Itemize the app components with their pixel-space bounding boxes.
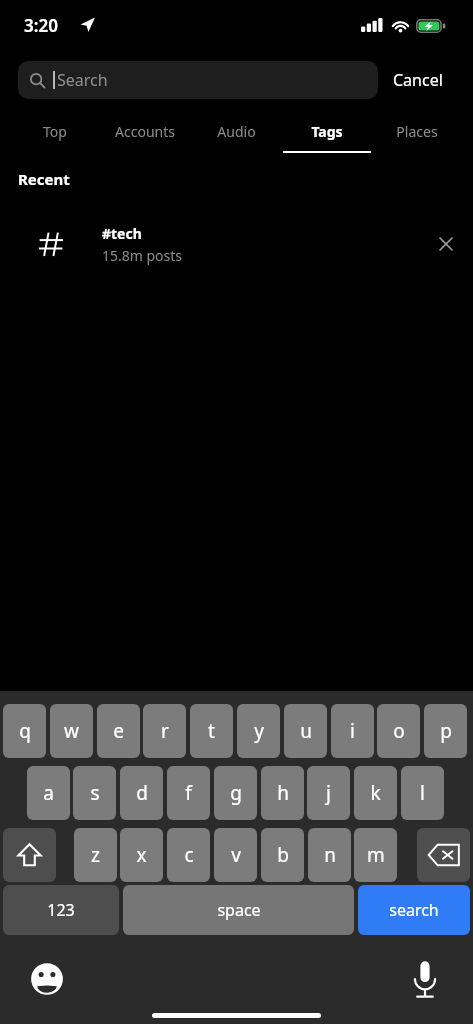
button[interactable]: t <box>190 704 233 758</box>
staticText: Tags <box>311 122 343 141</box>
staticText: Accounts <box>115 122 175 141</box>
staticText: search <box>389 899 439 921</box>
button[interactable]: y <box>237 704 280 758</box>
button[interactable]: w <box>50 704 93 758</box>
button[interactable]: #tech <box>0 213 473 275</box>
staticText: Recent <box>18 169 70 189</box>
staticText: Audio <box>217 122 256 141</box>
button[interactable]: Emoji keyboard <box>24 956 70 1002</box>
button[interactable]: search <box>358 885 470 935</box>
button[interactable]: q <box>3 704 46 758</box>
button[interactable]: r <box>143 704 186 758</box>
staticText: r <box>161 718 169 744</box>
button[interactable]: u <box>284 704 327 758</box>
staticText: Places <box>396 122 438 141</box>
button[interactable]: o <box>377 704 420 758</box>
button[interactable]: Shift <box>3 828 56 882</box>
button[interactable]: h <box>261 766 304 820</box>
staticText: 15.8m posts <box>102 246 183 265</box>
staticText: e <box>113 718 124 744</box>
button[interactable]: i <box>331 704 374 758</box>
staticText: d <box>136 780 148 806</box>
button[interactable]: 123 <box>3 885 119 935</box>
button[interactable]: Tags <box>282 114 372 154</box>
button[interactable]: n <box>308 828 351 882</box>
staticText: k <box>370 780 381 806</box>
button[interactable]: g <box>214 766 257 820</box>
button[interactable]: l <box>401 766 444 820</box>
staticText: v <box>231 842 241 868</box>
button[interactable]: k <box>354 766 397 820</box>
button[interactable]: p <box>424 704 467 758</box>
staticText: 3:20 <box>24 14 58 37</box>
staticText: Top <box>43 122 67 141</box>
staticText: x <box>136 842 147 868</box>
button[interactable]: m <box>354 828 397 882</box>
button[interactable]: space <box>123 885 354 935</box>
button[interactable]: d <box>120 766 163 820</box>
button[interactable]: v <box>214 828 257 882</box>
button[interactable]: Search <box>18 61 378 99</box>
button[interactable]: Voice input <box>402 953 448 1005</box>
button[interactable]: j <box>307 766 350 820</box>
staticText: l <box>420 780 425 806</box>
staticText: c <box>184 842 194 868</box>
button[interactable]: Audio <box>191 114 281 154</box>
button[interactable]: f <box>167 766 210 820</box>
staticText: Search <box>57 69 108 91</box>
button[interactable]: a <box>27 766 70 820</box>
staticText: 123 <box>47 899 75 921</box>
staticText: t <box>208 718 215 744</box>
button[interactable]: s <box>73 766 116 820</box>
staticText: #tech <box>102 224 142 243</box>
staticText: a <box>43 780 54 806</box>
button[interactable]: Cancel <box>388 62 448 98</box>
staticText: s <box>90 780 100 806</box>
button[interactable]: Backspace <box>417 828 470 882</box>
staticText: y <box>254 718 264 744</box>
staticText: o <box>393 718 405 744</box>
staticText: m <box>367 842 385 868</box>
button[interactable]: Remove #tech <box>425 223 467 265</box>
staticText: z <box>91 842 100 868</box>
button[interactable]: Places <box>372 114 462 154</box>
staticText: q <box>19 718 31 744</box>
button[interactable]: z <box>74 828 117 882</box>
staticText: i <box>350 718 355 744</box>
staticText: Cancel <box>393 69 443 91</box>
staticText: space <box>217 899 261 921</box>
staticText: w <box>64 718 79 744</box>
button[interactable]: e <box>97 704 140 758</box>
button[interactable]: Top <box>10 114 100 154</box>
staticText: u <box>300 718 312 744</box>
staticText: g <box>230 780 242 806</box>
staticText: h <box>277 780 289 806</box>
button[interactable]: b <box>261 828 304 882</box>
staticText: j <box>326 780 331 806</box>
staticText: b <box>277 842 289 868</box>
button[interactable]: c <box>167 828 210 882</box>
staticText: n <box>324 842 336 868</box>
staticText: f <box>185 780 192 806</box>
staticText: p <box>440 718 452 744</box>
button[interactable]: Accounts <box>100 114 190 154</box>
button[interactable]: x <box>120 828 163 882</box>
